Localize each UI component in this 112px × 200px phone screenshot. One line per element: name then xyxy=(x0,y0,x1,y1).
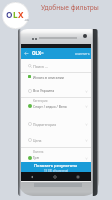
staticText: Спорт / отдых / Вело xyxy=(33,104,67,109)
staticText: O xyxy=(6,9,13,20)
button[interactable]: Показать результаты xyxy=(21,162,91,173)
staticText: X xyxy=(18,9,24,20)
button[interactable] xyxy=(21,148,91,162)
staticText: 18 300 объявлений xyxy=(44,169,69,173)
other: Back xyxy=(24,51,29,56)
staticText: Подкатегория xyxy=(33,122,57,127)
staticText: Вся Украина xyxy=(33,88,55,93)
staticText: Цена xyxy=(33,138,42,143)
button[interactable]: Home xyxy=(53,175,57,179)
button[interactable]: Recents xyxy=(76,175,80,179)
staticText: Искать в описании xyxy=(33,75,64,80)
staticText: L xyxy=(13,9,18,20)
button[interactable] xyxy=(21,73,91,83)
button[interactable] xyxy=(21,59,91,72)
staticText: очистить xyxy=(75,51,90,55)
button[interactable] xyxy=(21,132,91,147)
staticText: Удобные фильтры xyxy=(41,3,99,12)
button[interactable] xyxy=(21,98,91,114)
button[interactable] xyxy=(21,114,91,132)
button[interactable]: Back xyxy=(30,175,34,179)
staticText: Категория xyxy=(33,99,48,103)
staticText: Показать результаты xyxy=(34,163,78,169)
button[interactable]: OLX logo xyxy=(2,2,29,29)
staticText: Валюта xyxy=(33,150,44,154)
staticText: .ua xyxy=(39,51,44,55)
staticText: .ua xyxy=(24,18,29,22)
button[interactable] xyxy=(21,83,91,97)
staticText: Поиск ... xyxy=(33,64,48,69)
button[interactable] xyxy=(21,48,91,59)
staticText: OLX xyxy=(32,50,41,56)
staticText: Грн xyxy=(33,155,39,160)
